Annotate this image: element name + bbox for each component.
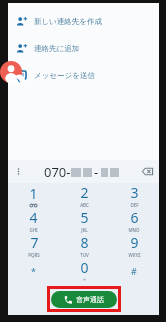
staticText: * <box>31 265 36 277</box>
staticText: 0 <box>80 258 89 277</box>
staticText: 3 <box>130 183 139 202</box>
staticText: ABC <box>80 202 89 208</box>
button[interactable]: 4 <box>8 208 59 233</box>
staticText: 5 <box>80 208 89 227</box>
button[interactable]: 0 <box>59 258 109 283</box>
staticText: TUV <box>80 252 89 258</box>
button[interactable]: More options <box>8 160 28 183</box>
staticText: # <box>131 265 137 277</box>
button[interactable]: 6 <box>109 208 159 233</box>
staticText: + <box>83 277 86 283</box>
button[interactable]: 9 <box>109 233 159 258</box>
staticText: 7 <box>30 233 39 252</box>
button[interactable]: 8 <box>59 233 109 258</box>
staticText: 新しい連絡先を作成 <box>34 17 103 26</box>
staticText: 1 <box>29 184 38 203</box>
button[interactable]: 音声通話 <box>51 291 117 308</box>
button[interactable]: * <box>8 258 59 283</box>
staticText: GHI <box>29 227 38 233</box>
button[interactable]: メッセージを送信 <box>8 62 159 89</box>
button[interactable]: Backspace <box>135 160 159 183</box>
staticText: 2 <box>80 183 89 202</box>
staticText: メッセージを送信 <box>34 71 95 80</box>
button[interactable]: 3 <box>109 183 159 208</box>
staticText: 8 <box>80 233 89 252</box>
staticText: 6 <box>130 208 139 227</box>
button[interactable]: 新しい連絡先を作成 <box>8 8 159 35</box>
staticText: 音声通話 <box>76 295 104 304</box>
button[interactable]: 2 <box>59 183 109 208</box>
button[interactable]: # <box>109 258 159 283</box>
button[interactable]: 連絡先に追加 <box>8 35 159 62</box>
staticText: DEF <box>130 202 139 208</box>
staticText: 9 <box>130 233 139 252</box>
staticText: - <box>94 163 99 181</box>
button[interactable]: 1 <box>8 183 59 208</box>
staticText: 連絡先に追加 <box>34 44 80 53</box>
staticText: 4 <box>29 208 38 227</box>
staticText: MNO <box>128 227 140 233</box>
staticText: WXYZ <box>128 252 141 258</box>
staticText: 070- <box>44 163 71 181</box>
button[interactable]: 7 <box>8 233 59 258</box>
button[interactable]: 5 <box>59 208 109 233</box>
staticText: PQRS <box>28 252 40 258</box>
staticText: JKL <box>81 227 88 233</box>
